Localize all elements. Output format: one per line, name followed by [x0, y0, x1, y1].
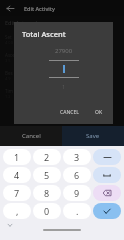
button[interactable]: 9 [63, 185, 91, 201]
button[interactable]: Backspace [93, 185, 121, 201]
button[interactable]: Back [4, 2, 16, 14]
button[interactable]: Minus [93, 149, 121, 165]
staticText: 1 [14, 151, 20, 163]
button[interactable]: 3 [63, 149, 91, 165]
staticText: 2 [44, 151, 50, 163]
staticText: 5 [44, 169, 50, 181]
staticText: Save [86, 132, 100, 140]
staticText: 4 [14, 169, 20, 181]
staticText: 6 [74, 169, 80, 181]
staticText: 27900 [55, 47, 73, 55]
button[interactable]: 4 [3, 167, 31, 183]
button[interactable]: 2 [33, 149, 61, 165]
staticText: 7 [14, 187, 20, 199]
staticText: 3 [74, 151, 80, 163]
button[interactable]: , [3, 203, 31, 219]
staticText: Asce [5, 52, 15, 58]
staticText: Set [5, 34, 12, 40]
button[interactable]: CANCEL [56, 106, 83, 119]
staticText: 0 [44, 205, 50, 217]
button[interactable]: 1 [3, 149, 31, 165]
button[interactable]: . [63, 203, 91, 219]
staticText: 1 [62, 83, 66, 90]
staticText: OK [95, 109, 103, 116]
staticText: , [16, 205, 19, 217]
button[interactable]: Space [93, 167, 121, 183]
button[interactable]: OK [91, 106, 107, 119]
button[interactable]: 7 [3, 185, 31, 201]
button[interactable]: 8 [33, 185, 61, 201]
button[interactable]: Done [93, 203, 121, 219]
button[interactable]: Cancel [0, 126, 62, 146]
button[interactable]: 6 [63, 167, 91, 183]
button[interactable]: Save [62, 126, 124, 146]
staticText: CANCEL [60, 109, 79, 116]
staticText: Total Ascent [22, 29, 66, 39]
staticText: 9 [74, 187, 80, 199]
button[interactable]: Hide keyboard [6, 221, 14, 229]
staticText: Edit Intervals [5, 19, 40, 26]
button[interactable]: 5 [33, 167, 61, 183]
staticText: Tim [5, 88, 13, 94]
staticText: Edit Activity [24, 5, 55, 12]
button[interactable]: 0 [33, 203, 61, 219]
staticText: Bes [5, 70, 13, 76]
staticText: 8 [44, 187, 50, 199]
staticText: . [76, 205, 79, 217]
staticText: Cancel [22, 132, 41, 140]
